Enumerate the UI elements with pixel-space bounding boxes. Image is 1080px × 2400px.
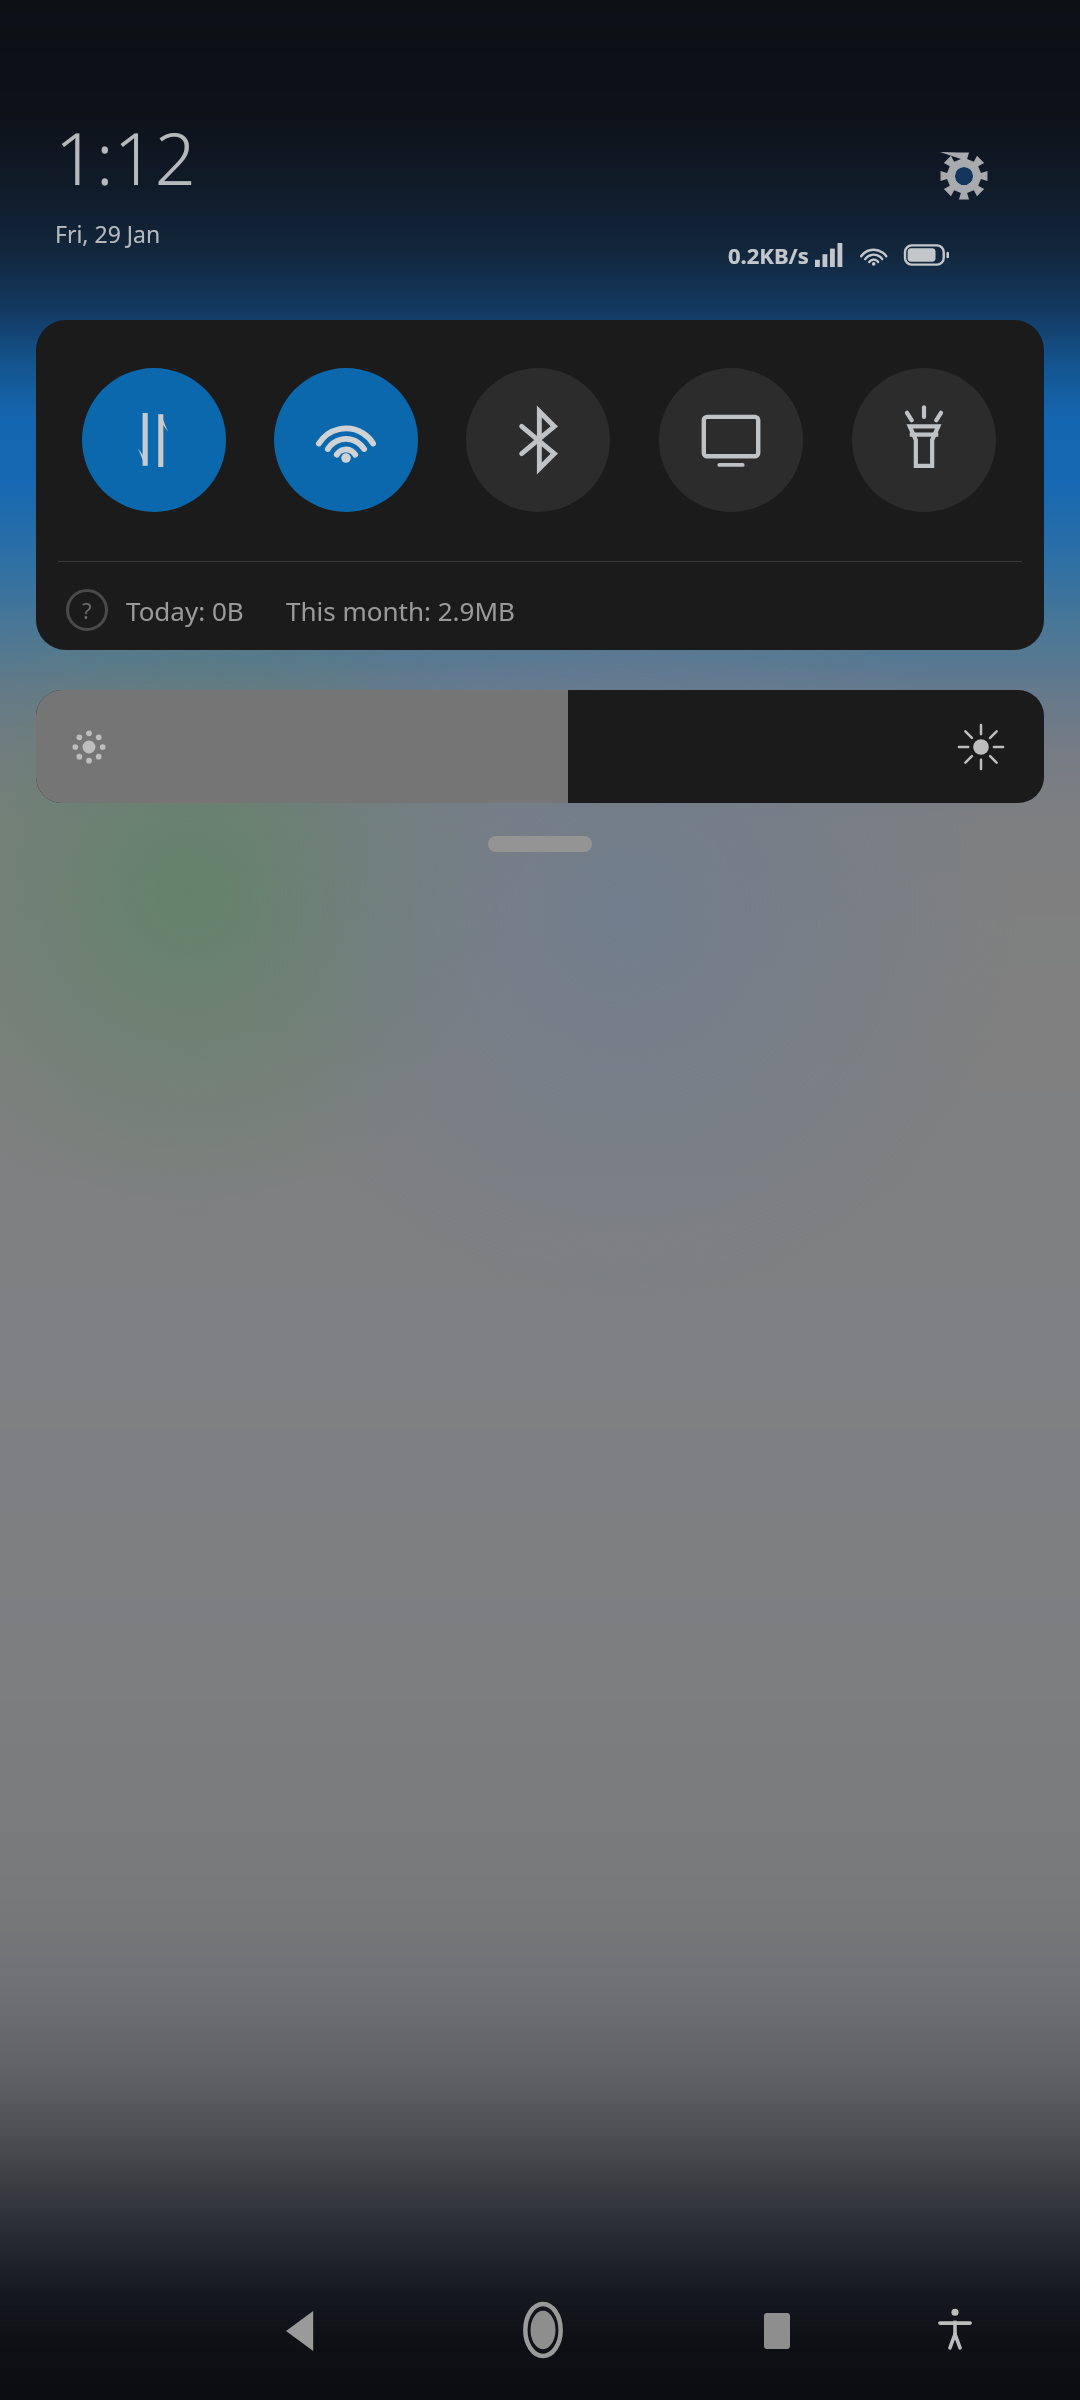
button[interactable]: Settings: [928, 140, 1000, 212]
button[interactable]: Back: [275, 2304, 329, 2358]
button[interactable]: Recents: [752, 2306, 802, 2356]
staticText: ?: [82, 595, 92, 625]
staticText: Fri, 29 Jan: [55, 218, 161, 249]
staticText: 1:12: [55, 108, 196, 206]
staticText: 0.2KB/s: [728, 240, 809, 270]
button[interactable]: Mobile data: [82, 368, 226, 512]
staticText: This month: 2.9MB: [286, 593, 515, 628]
button[interactable]: Brightness: [36, 690, 1044, 803]
button[interactable]: Flashlight: [852, 368, 996, 512]
button[interactable]: Bluetooth: [466, 368, 610, 512]
button[interactable]: Accessibility: [928, 2302, 982, 2356]
staticText: Today: 0B: [126, 593, 244, 628]
button[interactable]: Wi-Fi: [274, 368, 418, 512]
button[interactable]: Home: [513, 2300, 573, 2360]
button[interactable]: Cast: [659, 368, 803, 512]
button[interactable]: Data usage info: [66, 589, 108, 631]
